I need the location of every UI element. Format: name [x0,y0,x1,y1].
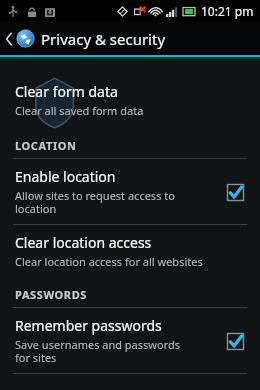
staticText: 10:21 pm [201,3,254,19]
staticText: Clear form data [15,82,118,101]
staticText: PASSWORDS [15,287,87,302]
button[interactable]: Toggle setting [222,179,248,205]
button[interactable]: Remember passwords [0,308,260,373]
button[interactable]: Clear form data [0,74,260,126]
button[interactable]: Clear location access [0,225,260,277]
staticText: Enable location [15,167,116,186]
staticText: Clear location access [15,233,152,252]
staticText: LOCATION [15,138,77,153]
staticText: Allow sites to request access to locatio… [15,188,175,216]
staticText: Privacy & security [41,29,166,49]
button[interactable]: Enable location [0,159,260,224]
staticText: Remember passwords [15,316,162,335]
staticText: Clear all saved form data [15,103,144,118]
staticText: Save usernames and passwords for sites [15,337,180,365]
staticText: Clear location access for all websites [15,254,203,269]
button[interactable]: Back to Privacy & security [0,22,260,55]
button[interactable]: Toggle setting [222,328,248,354]
